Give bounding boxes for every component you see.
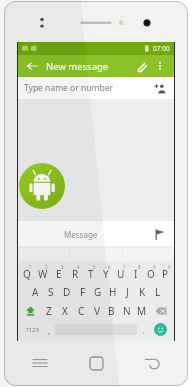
staticText: 4 (77, 264, 80, 270)
button[interactable]: 4 (67, 263, 83, 281)
button[interactable]: Send (150, 225, 168, 243)
staticText: F (80, 285, 86, 299)
button[interactable]: Emoji (149, 321, 171, 338)
staticText: Z (46, 304, 52, 318)
staticText: E (56, 267, 62, 281)
button[interactable]: More options (152, 58, 168, 74)
staticText: J (126, 285, 129, 299)
staticText: ?123 (26, 326, 39, 334)
staticText: D (63, 285, 71, 299)
staticText: 7 (123, 264, 126, 270)
staticText: Q (23, 267, 31, 281)
staticText: B (108, 304, 115, 318)
staticText: New message (46, 60, 109, 73)
button[interactable]: J (120, 283, 135, 300)
staticText: U (117, 267, 125, 281)
button[interactable]: Comma (43, 321, 55, 338)
button[interactable]: Type name or number (24, 77, 168, 99)
staticText: N (123, 304, 131, 318)
staticText: 5 (93, 264, 96, 270)
button[interactable]: 7 (113, 263, 128, 281)
staticText: Message (64, 229, 98, 240)
button[interactable]: 1 (19, 263, 35, 281)
staticText: R (72, 267, 79, 281)
button[interactable]: Android mascot (19, 163, 65, 209)
button[interactable]: ?123 (21, 321, 43, 338)
button[interactable]: Shift (19, 302, 41, 319)
staticText: C (78, 304, 85, 318)
button[interactable]: 9 (143, 263, 158, 281)
button[interactable]: Z (41, 302, 57, 319)
staticText: A (32, 285, 39, 299)
staticText: 07:00 (153, 44, 170, 53)
staticText: W (38, 267, 48, 281)
button[interactable]: B (104, 302, 119, 319)
staticText: L (155, 285, 161, 299)
button[interactable]: Back (24, 58, 40, 74)
button[interactable]: F (75, 283, 90, 300)
staticText: Y (103, 267, 109, 281)
staticText: S (48, 285, 54, 299)
button[interactable]: 5 (83, 263, 98, 281)
staticText: 6 (108, 264, 111, 270)
staticText: I (134, 267, 138, 281)
button[interactable]: D (59, 283, 75, 300)
button[interactable]: Recent apps (27, 351, 53, 375)
button[interactable]: 6 (98, 263, 113, 281)
button[interactable]: M (134, 302, 149, 319)
button[interactable]: L (150, 283, 165, 300)
staticText: 0 (168, 264, 171, 270)
staticText: X (62, 304, 68, 318)
button[interactable]: Back (139, 351, 165, 375)
button[interactable]: Period (137, 321, 149, 338)
button[interactable]: Space (55, 324, 137, 335)
button[interactable]: 3 (51, 263, 67, 281)
button[interactable]: 0 (158, 263, 173, 281)
button[interactable]: S (43, 283, 59, 300)
button[interactable]: G (90, 283, 105, 300)
staticText: 2 (45, 264, 48, 270)
staticText: K (139, 285, 146, 299)
staticText: O (147, 267, 155, 281)
staticText: 1 (29, 264, 32, 270)
button[interactable]: Home (83, 351, 109, 375)
staticText: 9 (153, 264, 156, 270)
staticText: , (48, 324, 51, 336)
staticText: 8 (138, 264, 141, 270)
staticText: Type name or number (24, 82, 113, 94)
button[interactable]: 2 (35, 263, 51, 281)
button[interactable]: A (27, 283, 43, 300)
staticText: 3 (61, 264, 64, 270)
button[interactable]: C (73, 302, 89, 319)
button[interactable]: Backspace (149, 302, 173, 319)
staticText: H (109, 285, 117, 299)
staticText: P (162, 267, 169, 281)
button[interactable]: Message (64, 229, 150, 240)
staticText: M (137, 304, 147, 318)
staticText: . (142, 324, 145, 336)
button[interactable]: N (119, 302, 134, 319)
staticText: T (88, 267, 94, 281)
button[interactable]: X (57, 302, 73, 319)
other: Add contact (152, 80, 168, 96)
staticText: V (94, 304, 100, 318)
button[interactable]: Attach (132, 57, 150, 75)
button[interactable]: V (89, 302, 104, 319)
staticText: G (94, 285, 102, 299)
button[interactable]: H (105, 283, 120, 300)
button[interactable]: 8 (128, 263, 143, 281)
button[interactable]: K (135, 283, 150, 300)
